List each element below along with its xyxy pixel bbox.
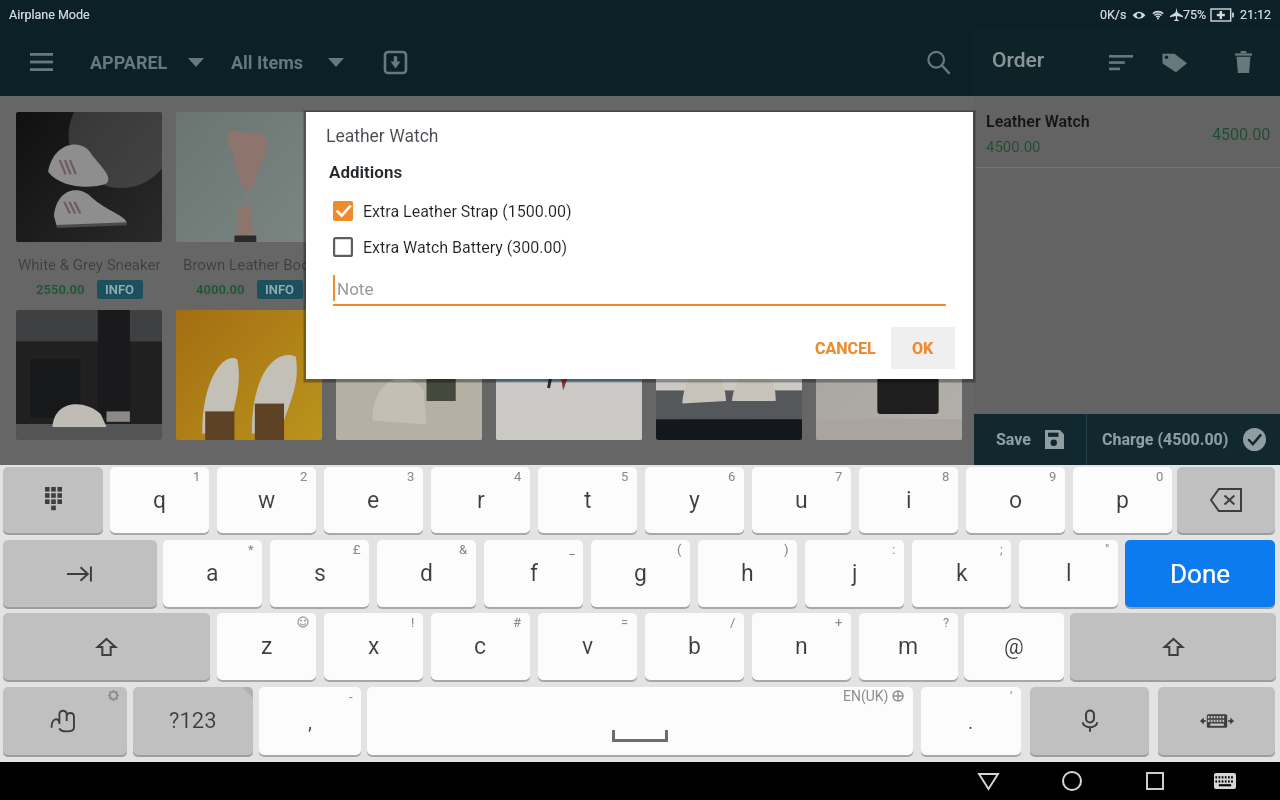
button[interactable]: n — [752, 613, 851, 680]
button[interactable]: , — [259, 687, 361, 755]
button[interactable]: j — [805, 540, 904, 607]
button[interactable]: Delete — [1220, 28, 1266, 96]
staticText: INFO — [265, 282, 295, 297]
staticText: Done — [1170, 559, 1231, 589]
staticText: Airplane Mode — [9, 7, 90, 22]
staticText: x — [368, 633, 380, 660]
button[interactable]: z — [217, 613, 316, 680]
staticText: 21:12 — [1240, 7, 1272, 22]
button[interactable]: o — [966, 467, 1065, 533]
button[interactable]: q — [110, 467, 209, 533]
button[interactable]: Menu — [18, 28, 64, 96]
staticText: j — [852, 560, 858, 587]
button[interactable]: w — [217, 467, 316, 533]
staticText: INFO — [105, 282, 135, 297]
button[interactable]: u — [752, 467, 851, 533]
button[interactable]: Download — [373, 28, 417, 96]
button[interactable]: INFO — [97, 280, 143, 299]
button[interactable]: y — [645, 467, 744, 533]
button[interactable]: m — [859, 613, 958, 680]
button[interactable]: ?123 — [133, 687, 253, 755]
button[interactable]: Leather Watch — [974, 96, 1280, 167]
button[interactable]: k — [912, 540, 1011, 607]
button[interactable]: e — [324, 467, 423, 533]
button[interactable]: Search — [914, 28, 962, 96]
staticText: 0 — [1156, 469, 1164, 484]
button[interactable]: Sort — [1098, 28, 1144, 96]
button[interactable]: v — [538, 613, 637, 680]
staticText: £ — [353, 542, 361, 557]
button[interactable]: s — [270, 540, 369, 607]
button[interactable]: APPAREL — [84, 28, 210, 96]
button[interactable]: b — [645, 613, 744, 680]
button[interactable]: All Items — [225, 28, 350, 96]
button[interactable]: d — [377, 540, 476, 607]
button[interactable]: l — [1019, 540, 1118, 607]
staticText: s — [314, 560, 326, 587]
button[interactable]: f — [484, 540, 583, 607]
staticText: ( — [677, 542, 682, 557]
staticText: Order — [992, 48, 1045, 73]
button[interactable]: Extra Watch Battery (300.00) — [306, 232, 973, 262]
button[interactable]: Switch keyboard — [1158, 687, 1275, 755]
button[interactable]: Number pad — [3, 467, 103, 533]
button[interactable] — [16, 310, 162, 440]
button[interactable]: Keyboard — [1189, 762, 1260, 800]
button[interactable]: Back — [953, 762, 1024, 800]
button[interactable]: g — [591, 540, 690, 607]
button[interactable]: Charge (4500.00) — [1087, 414, 1280, 465]
button[interactable]: INFO — [257, 280, 303, 299]
button[interactable]: . — [921, 687, 1021, 755]
button[interactable]: x — [324, 613, 423, 680]
button[interactable] — [336, 310, 482, 440]
button[interactable]: OK — [891, 327, 955, 369]
staticText: * — [248, 542, 254, 557]
button[interactable]: Recent apps — [1119, 762, 1190, 800]
button[interactable]: CANCEL — [801, 326, 890, 370]
button[interactable] — [816, 310, 962, 440]
button[interactable] — [656, 310, 802, 440]
button[interactable] — [496, 310, 642, 440]
button[interactable]: Gesture typing — [3, 687, 127, 755]
button[interactable]: Done — [1125, 540, 1275, 607]
button[interactable] — [176, 310, 322, 440]
button[interactable]: Discount — [1151, 28, 1197, 96]
button[interactable]: White & Grey Sneaker — [16, 112, 162, 299]
button[interactable]: Home — [1036, 762, 1107, 800]
staticText: & — [459, 542, 468, 557]
button[interactable]: Backspace — [1177, 467, 1275, 533]
staticText: _ — [569, 542, 575, 557]
button[interactable]: Space — [367, 687, 913, 755]
button[interactable]: Blue Heels — [496, 112, 642, 299]
button[interactable]: Extra Leather Strap (1500.00) — [306, 196, 973, 226]
staticText: 7 — [835, 469, 843, 484]
button[interactable]: Shift — [3, 613, 210, 680]
button[interactable]: p — [1073, 467, 1172, 533]
button[interactable]: Brown Leather Boot — [176, 112, 322, 299]
button[interactable]: Tab — [3, 540, 157, 607]
button[interactable]: Shift — [1070, 613, 1276, 680]
staticText: i — [906, 487, 912, 514]
button[interactable]: Save — [974, 414, 1086, 465]
button[interactable]: @ — [964, 613, 1064, 680]
button[interactable]: Leather Watch — [336, 112, 482, 299]
staticText: EN(UK) — [843, 688, 889, 704]
staticText: . — [968, 710, 974, 733]
button[interactable]: Voice input — [1030, 687, 1149, 755]
staticText: , — [308, 710, 312, 733]
button[interactable]: t — [538, 467, 637, 533]
button[interactable]: c — [431, 613, 530, 680]
button[interactable]: r — [431, 467, 530, 533]
button[interactable]: h — [698, 540, 797, 607]
button[interactable]: i — [859, 467, 958, 533]
button[interactable]: a — [163, 540, 262, 607]
